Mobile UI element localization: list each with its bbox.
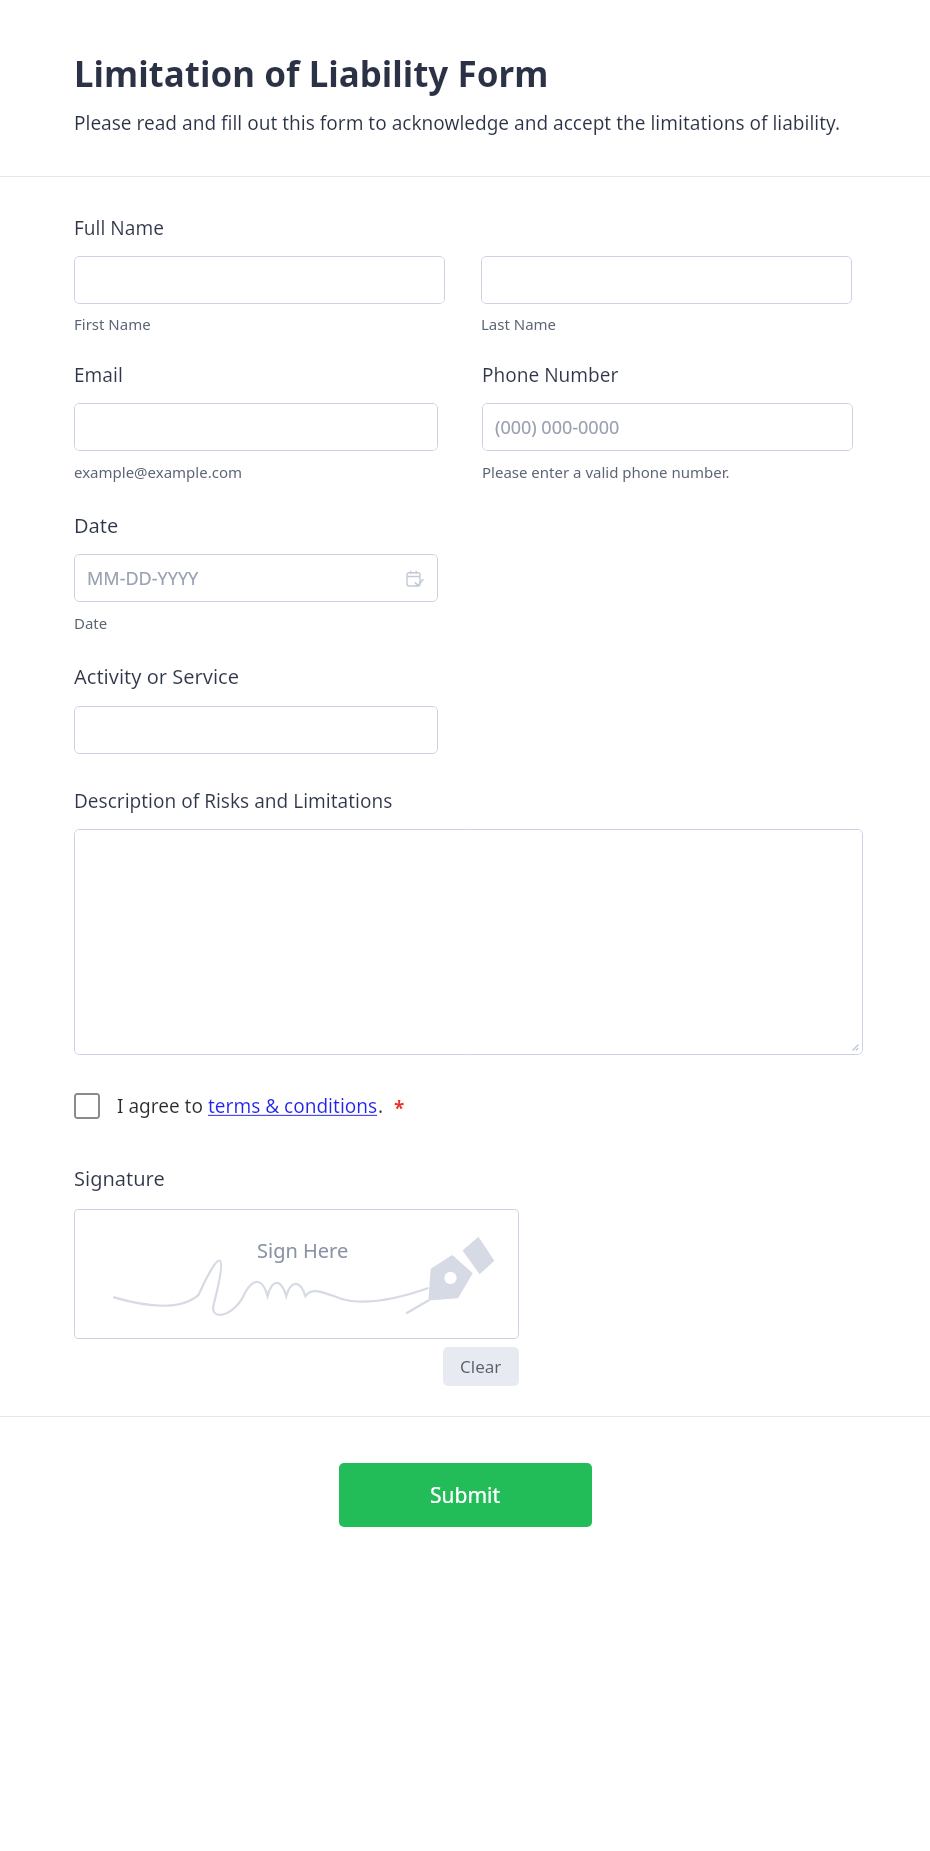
staticText: First Name: [74, 314, 151, 334]
staticText: (000) 000-0000: [495, 415, 620, 440]
staticText: *: [394, 1095, 405, 1121]
staticText: Activity or Service: [74, 663, 239, 690]
staticText: Sign Here: [257, 1237, 349, 1264]
staticText: Signature: [74, 1165, 165, 1192]
staticText: Please enter a valid phone number.: [482, 462, 730, 482]
staticText: Submit: [430, 1481, 501, 1510]
button[interactable]: Clear: [443, 1347, 519, 1386]
button[interactable]: [74, 256, 445, 304]
staticText: Date: [74, 512, 119, 539]
staticText: Full Name: [74, 215, 164, 241]
button[interactable]: [74, 829, 863, 1055]
other: I agree to terms and conditions checkbox: [74, 1093, 100, 1119]
staticText: Email: [74, 362, 123, 388]
button[interactable]: [74, 706, 438, 754]
button[interactable]: (000) 000-0000: [482, 403, 853, 451]
staticText: example@example.com: [74, 462, 242, 482]
staticText: Please read and fill out this form to ac…: [74, 110, 841, 136]
button[interactable]: [481, 256, 852, 304]
staticText: Clear: [460, 1355, 502, 1378]
button[interactable]: Submit: [339, 1463, 592, 1527]
staticText: .: [378, 1093, 384, 1119]
button[interactable]: Signature pad, sign here: [74, 1209, 519, 1339]
button[interactable]: I agree to terms and conditions checkbox: [74, 1093, 405, 1119]
button[interactable]: MM-DD-YYYY: [74, 554, 438, 602]
staticText: Date: [74, 613, 108, 633]
staticText: MM-DD-YYYY: [87, 566, 199, 591]
staticText: Description of Risks and Limitations: [74, 788, 393, 814]
staticText: Last Name: [481, 314, 557, 334]
staticText: Limitation of Liability Form: [74, 50, 549, 98]
staticText: Phone Number: [482, 362, 619, 388]
button[interactable]: [74, 403, 438, 451]
staticText: I agree to: [117, 1093, 208, 1119]
button[interactable]: terms & conditions: [208, 1093, 378, 1119]
